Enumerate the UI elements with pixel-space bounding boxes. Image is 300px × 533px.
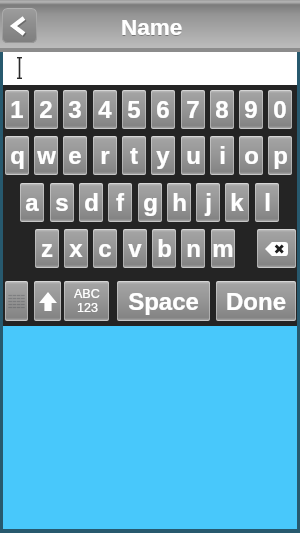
staticText: Done: [226, 288, 286, 315]
button[interactable]: y: [151, 136, 175, 175]
staticText: u: [186, 142, 201, 169]
button[interactable]: Back: [2, 8, 37, 43]
staticText: 4: [98, 96, 112, 123]
button[interactable]: z: [35, 229, 59, 268]
button[interactable]: 5: [122, 90, 146, 129]
staticText: 3: [68, 96, 82, 123]
staticText: w: [37, 142, 56, 169]
staticText: x: [69, 235, 83, 262]
staticText: b: [157, 235, 172, 262]
button[interactable]: [0, 52, 300, 85]
staticText: c: [98, 235, 112, 262]
staticText: 7: [186, 96, 200, 123]
button[interactable]: Backspace: [257, 229, 296, 268]
staticText: r: [100, 142, 110, 169]
button[interactable]: 4: [93, 90, 117, 129]
staticText: o: [244, 142, 259, 169]
staticText: s: [55, 189, 69, 216]
button[interactable]: s: [50, 183, 74, 222]
button[interactable]: Keyboard options: [5, 281, 28, 321]
staticText: 1: [10, 96, 24, 123]
button[interactable]: b: [152, 229, 176, 268]
staticText: 123: [77, 301, 98, 315]
button[interactable]: f: [108, 183, 132, 222]
button[interactable]: m: [211, 229, 235, 268]
button[interactable]: w: [34, 136, 58, 175]
staticText: j: [205, 189, 212, 216]
button[interactable]: k: [225, 183, 249, 222]
staticText: n: [186, 235, 201, 262]
staticText: p: [273, 142, 288, 169]
button[interactable]: 1: [5, 90, 29, 129]
button[interactable]: p: [268, 136, 292, 175]
button[interactable]: q: [5, 136, 29, 175]
button[interactable]: 8: [210, 90, 234, 129]
button[interactable]: 0: [268, 90, 292, 129]
button[interactable]: v: [123, 229, 147, 268]
staticText: 5: [127, 96, 141, 123]
button[interactable]: 3: [63, 90, 87, 129]
staticText: 0: [273, 96, 287, 123]
button[interactable]: 2: [34, 90, 58, 129]
staticText: Name: [121, 15, 183, 40]
staticText: 2: [39, 96, 53, 123]
button[interactable]: h: [167, 183, 191, 222]
staticText: ABC: [74, 287, 100, 301]
button[interactable]: l: [255, 183, 279, 222]
staticText: Space: [128, 288, 199, 315]
button[interactable]: x: [64, 229, 88, 268]
staticText: Name: [121, 16, 183, 41]
button[interactable]: g: [138, 183, 162, 222]
staticText: e: [68, 142, 82, 169]
button[interactable]: Done: [216, 281, 296, 321]
staticText: 6: [156, 96, 170, 123]
button[interactable]: e: [63, 136, 87, 175]
button[interactable]: d: [79, 183, 103, 222]
button[interactable]: 9: [239, 90, 263, 129]
staticText: y: [156, 142, 170, 169]
staticText: t: [130, 142, 138, 169]
staticText: l: [264, 189, 271, 216]
staticText: q: [10, 142, 25, 169]
staticText: 8: [215, 96, 229, 123]
button[interactable]: j: [196, 183, 220, 222]
staticText: i: [219, 142, 226, 169]
button[interactable]: o: [239, 136, 263, 175]
staticText: m: [212, 235, 234, 262]
staticText: d: [84, 189, 99, 216]
button[interactable]: r: [93, 136, 117, 175]
button[interactable]: c: [93, 229, 117, 268]
staticText: 9: [244, 96, 258, 123]
staticText: h: [172, 189, 187, 216]
button[interactable]: t: [122, 136, 146, 175]
button[interactable]: Space: [117, 281, 210, 321]
staticText: v: [128, 235, 142, 262]
button[interactable]: u: [181, 136, 205, 175]
button[interactable]: n: [181, 229, 205, 268]
button[interactable]: a: [20, 183, 44, 222]
button[interactable]: Shift: [34, 281, 61, 321]
button[interactable]: Switch to ABC 123: [64, 281, 109, 321]
staticText: f: [116, 189, 124, 216]
button[interactable]: 7: [181, 90, 205, 129]
staticText: g: [143, 189, 158, 216]
staticText: z: [41, 235, 53, 262]
staticText: a: [25, 189, 39, 216]
button[interactable]: i: [210, 136, 234, 175]
button[interactable]: 6: [151, 90, 175, 129]
staticText: k: [230, 189, 244, 216]
